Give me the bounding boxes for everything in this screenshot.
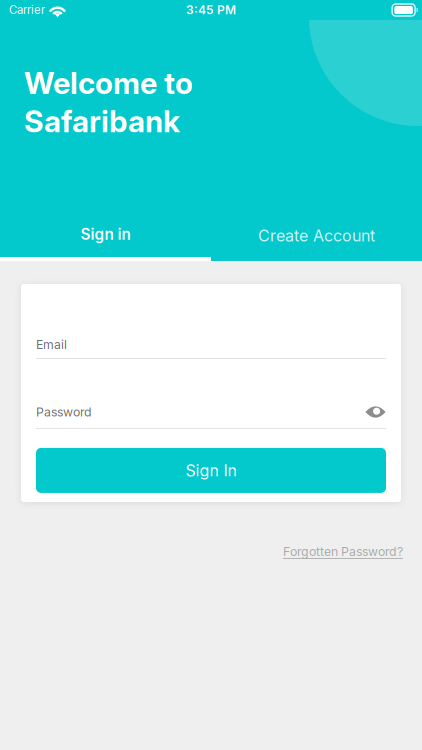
staticText: Email xyxy=(36,337,67,352)
button[interactable]: Create Account xyxy=(211,205,422,261)
staticText: Forgotten Password? xyxy=(283,544,403,559)
staticText: Password xyxy=(36,404,92,419)
button[interactable]: Sign In xyxy=(36,448,386,493)
staticText: Sign in xyxy=(80,225,130,244)
button[interactable]: Forgotten Password? xyxy=(283,544,403,559)
button[interactable]: Show password xyxy=(365,403,386,420)
staticText: 3:45 PM xyxy=(186,3,236,17)
staticText: Safaribank xyxy=(24,103,180,140)
staticText: Create Account xyxy=(258,226,375,245)
staticText: Welcome to xyxy=(24,65,193,101)
button[interactable]: Sign in xyxy=(0,205,211,261)
staticText: Sign In xyxy=(185,461,236,480)
staticText: Carrier xyxy=(9,3,45,17)
